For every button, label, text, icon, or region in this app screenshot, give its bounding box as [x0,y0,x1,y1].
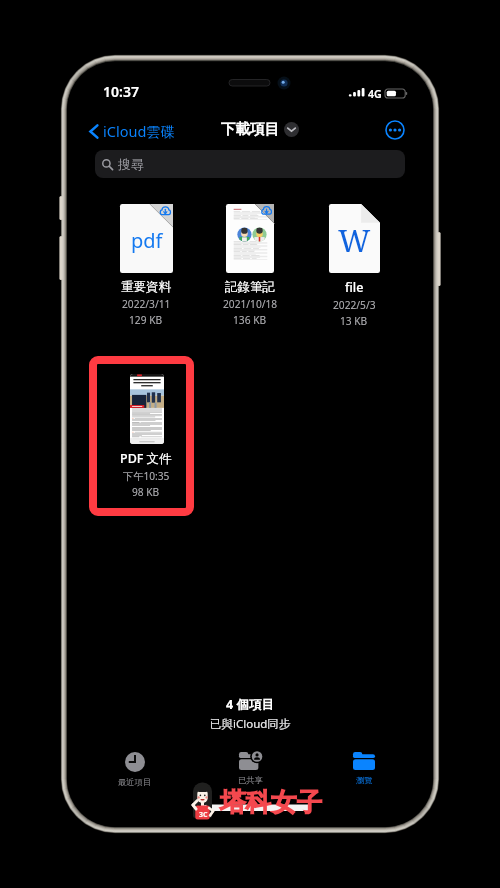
button[interactable]: More options [385,120,405,140]
staticText: 下午10:35 [123,469,170,483]
staticText: 98 KB [132,485,160,499]
staticText: 4 個項目 [226,696,274,713]
staticText: 最近項目 [118,777,152,787]
staticText: 2022/5/3 [333,298,376,312]
staticText: 塔科女子 [220,786,322,818]
staticText: 129 KB [129,313,163,327]
button[interactable]: 瀏覽 [327,752,401,785]
button[interactable]: pdf [100,204,192,327]
staticText: 3C [199,810,208,820]
button[interactable]: 記錄筆記 [204,204,296,327]
staticText: 下載項目 [221,120,279,138]
staticText: PDF 文件 [120,450,172,467]
staticText: file [345,279,364,296]
staticText: 記錄筆記 [225,279,275,295]
staticText: 10:37 [103,82,139,101]
staticText: 136 KB [233,313,267,327]
staticText: pdf [131,227,163,254]
staticText: 2021/10/18 [223,297,278,311]
button[interactable]: 最近項目 [98,752,172,787]
staticText: 已共享 [238,775,263,785]
button[interactable]: W [308,204,400,328]
button[interactable]: PDF 文件 [100,374,192,499]
staticText: W [338,219,371,261]
staticText: 2022/3/11 [122,297,171,311]
staticText: 搜尋 [118,156,144,172]
staticText: 13 KB [340,314,368,328]
staticText: 4G [368,87,382,101]
button[interactable]: iCloud雲碟 [88,119,177,143]
button[interactable]: 已共享 [213,752,287,785]
button[interactable]: 下載項目 [221,120,299,138]
staticText: 已與iCloud同步 [210,716,291,732]
staticText: 重要資料 [121,279,171,295]
staticText: iCloud雲碟 [103,121,176,141]
staticText: 瀏覽 [356,775,373,785]
button[interactable]: 搜尋 [95,150,405,178]
